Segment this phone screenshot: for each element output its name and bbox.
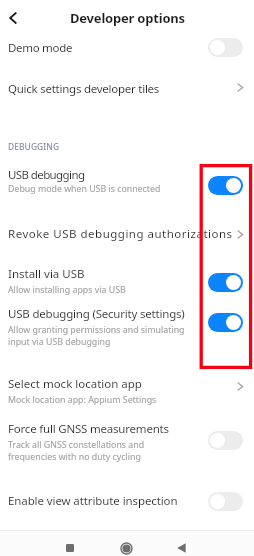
- button[interactable]: [208, 176, 243, 195]
- staticText: USB debugging: [8, 167, 85, 183]
- button[interactable]: [0, 488, 254, 515]
- staticText: Enable view attribute inspection: [8, 493, 178, 509]
- button[interactable]: [0, 301, 254, 350]
- button[interactable]: [208, 273, 243, 292]
- button[interactable]: [208, 492, 243, 511]
- staticText: DEBUGGING: [8, 141, 60, 152]
- staticText: Mock location app: Appium Settings: [8, 394, 157, 406]
- staticText: Quick settings developer tiles: [8, 81, 160, 97]
- button[interactable]: [0, 74, 254, 101]
- button[interactable]: [0, 34, 254, 61]
- staticText: Install via USB: [8, 266, 85, 282]
- button[interactable]: [110, 537, 142, 556]
- button[interactable]: [165, 537, 197, 556]
- button[interactable]: [0, 162, 254, 200]
- button[interactable]: [208, 431, 243, 450]
- staticText: Allow installing apps via USB: [8, 284, 126, 296]
- button[interactable]: [54, 537, 86, 556]
- button[interactable]: [0, 221, 254, 247]
- button[interactable]: [208, 313, 243, 332]
- staticText: Debug mode when USB is connected: [8, 183, 161, 195]
- button[interactable]: [9, 12, 17, 24]
- staticText: USB debugging (Security settings): [8, 306, 185, 322]
- staticText: Developer options: [70, 9, 185, 27]
- button[interactable]: [0, 416, 254, 465]
- button[interactable]: [0, 261, 254, 299]
- staticText: Track all GNSS constellations and freque…: [8, 439, 145, 462]
- staticText: Revoke USB debugging authorizations: [8, 226, 233, 242]
- button[interactable]: [208, 38, 243, 57]
- button[interactable]: [0, 371, 254, 409]
- staticText: Select mock location app: [8, 376, 142, 392]
- staticText: Demo mode: [8, 40, 73, 56]
- staticText: Force full GNSS measurements: [8, 421, 169, 437]
- staticText: Allow granting permissions and simulatin…: [8, 324, 185, 347]
